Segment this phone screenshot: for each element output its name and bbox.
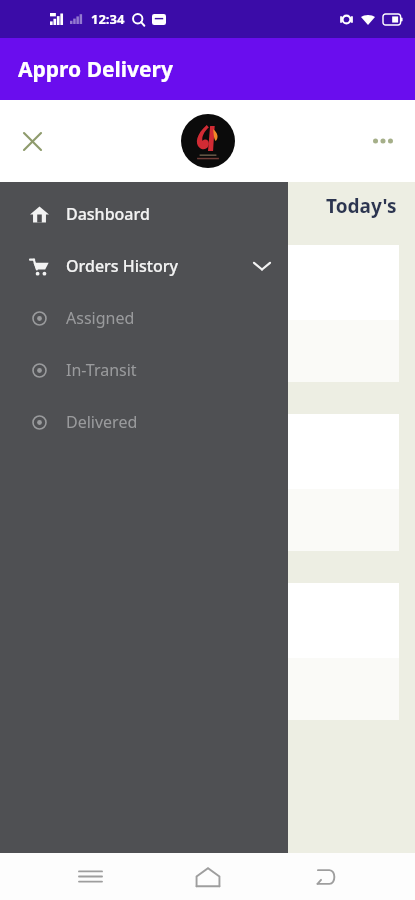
staticText: Orders History bbox=[66, 255, 178, 277]
button[interactable]: Assigned bbox=[0, 292, 288, 344]
button[interactable]: In-Transit bbox=[0, 344, 288, 396]
button[interactable]: More options bbox=[363, 121, 403, 161]
button[interactable]: Appro logo bbox=[181, 114, 235, 168]
staticText: In-Transit bbox=[66, 359, 137, 381]
button[interactable]: Dashboard bbox=[0, 188, 288, 240]
staticText: Delivered bbox=[66, 411, 138, 433]
staticText: Assigned bbox=[66, 307, 135, 329]
button[interactable]: Orders History bbox=[0, 240, 288, 292]
button[interactable]: 0 bbox=[16, 583, 399, 720]
staticText: Dashboard bbox=[66, 203, 150, 225]
button[interactable]: Delivered bbox=[0, 396, 288, 448]
button[interactable]: Back bbox=[297, 853, 353, 900]
staticText: Appro Delivery bbox=[18, 55, 173, 84]
button[interactable]: 0 bbox=[16, 414, 399, 551]
button[interactable]: Home bbox=[180, 853, 236, 900]
button[interactable]: 0 bbox=[16, 245, 399, 382]
staticText: Today's bbox=[326, 193, 397, 219]
staticText: 12:34 bbox=[91, 10, 125, 28]
button[interactable]: Recent apps bbox=[62, 853, 118, 900]
button[interactable]: Close menu bbox=[12, 121, 52, 161]
